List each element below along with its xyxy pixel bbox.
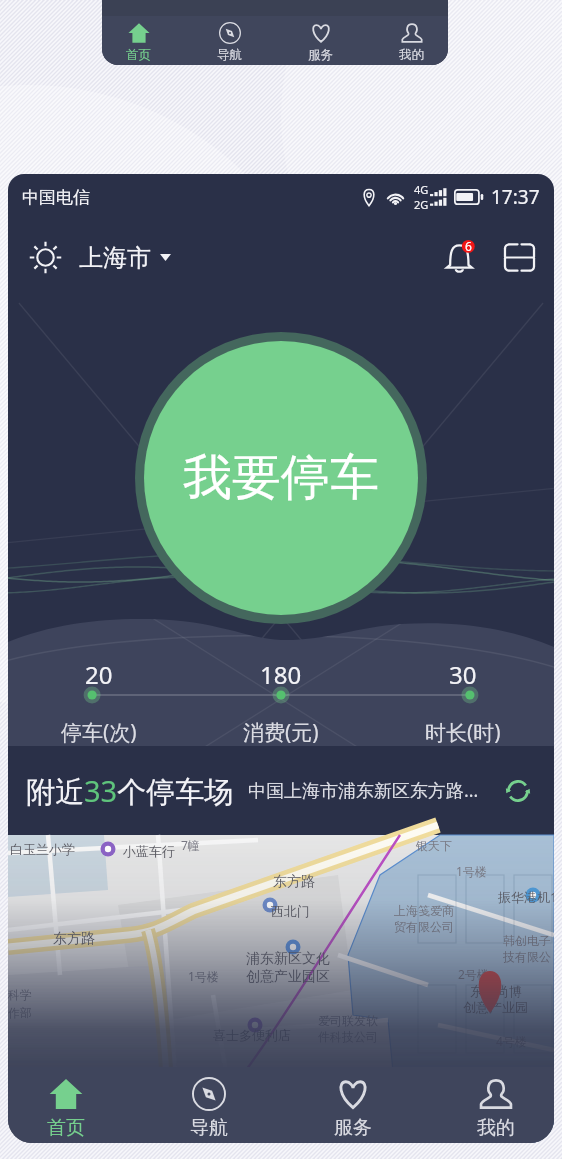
staticText: 7幢 xyxy=(181,837,200,853)
staticText: 附近33个停车场 xyxy=(26,771,234,811)
staticText: 东方路 xyxy=(53,930,95,948)
button[interactable]: Scan QR code xyxy=(497,235,541,279)
staticText: 我要停车 xyxy=(183,447,379,509)
staticText: 喜士多便利店 xyxy=(213,1027,291,1043)
button[interactable]: Notifications xyxy=(438,235,482,279)
staticText: 4号楼 xyxy=(496,1033,527,1049)
staticText: 中国电信 xyxy=(22,187,90,208)
staticText: 贸有限公司 xyxy=(394,919,454,934)
staticText: 导航 xyxy=(190,1116,228,1140)
staticText: 上海笺爱商 xyxy=(394,903,454,918)
staticText: 件科技公司 xyxy=(318,1029,378,1044)
staticText: 上海市 xyxy=(79,243,151,273)
staticText: 服务 xyxy=(308,47,334,63)
button[interactable]: 首页 xyxy=(113,16,164,65)
staticText: 技有限公 xyxy=(503,949,551,964)
staticText: 6 xyxy=(465,238,472,254)
staticText: 东方路 xyxy=(273,873,315,891)
staticText: 2号楼 xyxy=(458,966,489,982)
staticText: 浦东新区文化 xyxy=(246,950,330,968)
staticText: 首页 xyxy=(126,47,152,63)
button[interactable]: 我要停车 xyxy=(144,341,418,615)
staticText: 我的 xyxy=(399,47,425,63)
staticText: 服务 xyxy=(334,1116,372,1140)
button[interactable]: 首页 xyxy=(26,1067,106,1143)
staticText: 30 xyxy=(449,658,477,691)
button[interactable]: 20 xyxy=(8,641,190,746)
staticText: 20 xyxy=(85,658,113,691)
staticText: 1号楼 xyxy=(456,863,487,879)
staticText: 创意产业园 xyxy=(463,999,528,1015)
staticText: 白玉兰小学 xyxy=(10,841,75,857)
staticText: 西北门 xyxy=(271,903,310,919)
button[interactable]: 上海市 xyxy=(22,234,177,281)
staticText: 振华港机1号 xyxy=(498,888,554,906)
button[interactable]: 服务 xyxy=(295,16,346,65)
staticText: 停车(次) xyxy=(61,718,137,746)
staticText: 2G xyxy=(414,197,429,212)
button[interactable]: 服务 xyxy=(313,1067,393,1143)
staticText: 消费(元) xyxy=(243,718,319,746)
staticText: 首页 xyxy=(47,1116,85,1140)
staticText: 东方尚博 xyxy=(470,983,522,999)
staticText: 导航 xyxy=(217,47,243,63)
staticText: 科学 xyxy=(8,987,32,1002)
staticText: 创意产业园区 xyxy=(246,968,330,986)
staticText: 4G xyxy=(414,182,429,197)
staticText: 我的 xyxy=(477,1116,515,1140)
button[interactable]: 我的 xyxy=(456,1067,536,1143)
button[interactable]: 导航 xyxy=(204,16,255,65)
staticText: 17:37 xyxy=(491,184,540,210)
staticText: 1号楼 xyxy=(188,968,219,984)
staticText: 韩创电子 xyxy=(503,933,551,948)
staticText: 180 xyxy=(260,658,302,691)
staticText: 银天下 xyxy=(416,838,452,853)
button[interactable]: 180 xyxy=(190,641,372,746)
staticText: 中国上海市浦东新区东方路… xyxy=(248,778,479,803)
button[interactable]: 30 xyxy=(372,641,554,746)
staticText: 时长(时) xyxy=(425,718,501,746)
staticText: 作部 xyxy=(8,1005,32,1020)
staticText: 爱司联发软 xyxy=(318,1013,378,1028)
button[interactable]: 我的 xyxy=(386,16,437,65)
staticText: 小蓝车行 xyxy=(123,843,175,859)
button[interactable]: Refresh xyxy=(500,773,536,809)
button[interactable]: 导航 xyxy=(169,1067,249,1143)
